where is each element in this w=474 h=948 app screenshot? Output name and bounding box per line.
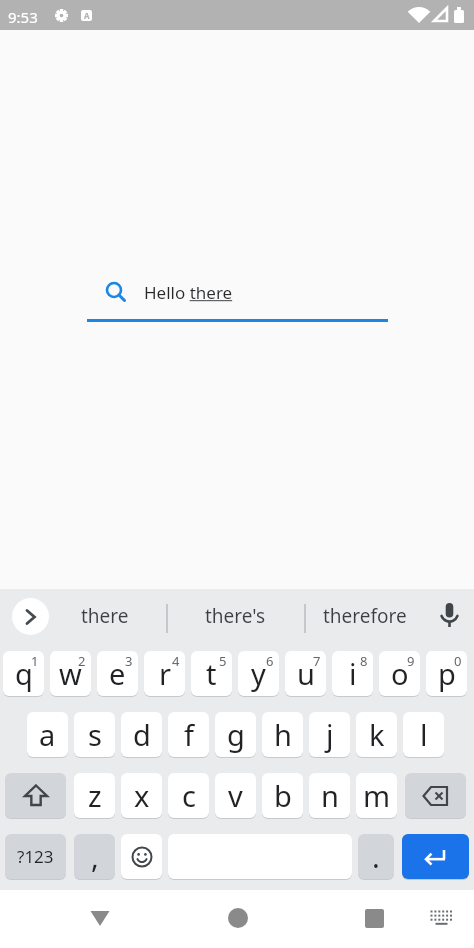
button[interactable]: ?123 (0, 826, 71, 887)
button[interactable] (165, 826, 355, 887)
button[interactable]: x (118, 765, 165, 826)
staticText: 2 (78, 652, 86, 670)
staticText: t (206, 654, 217, 693)
button[interactable] (0, 765, 71, 826)
button[interactable]: u (282, 643, 329, 704)
button[interactable]: therefore (315, 589, 415, 643)
button[interactable]: e (94, 643, 141, 704)
button[interactable]: q (0, 643, 47, 704)
button[interactable]: g (212, 704, 259, 765)
staticText: a (39, 715, 56, 754)
staticText: 9 (407, 652, 415, 670)
staticText: b (274, 776, 292, 815)
staticText: z (88, 776, 102, 815)
staticText: j (326, 715, 334, 754)
staticText: h (274, 715, 292, 754)
button[interactable]: n (306, 765, 353, 826)
button[interactable]: r (141, 643, 188, 704)
button[interactable]: m (353, 765, 400, 826)
staticText: . (372, 837, 380, 876)
button[interactable]: w (47, 643, 94, 704)
staticText: n (321, 776, 339, 815)
button[interactable]: . (355, 826, 397, 887)
button[interactable]: there (55, 589, 155, 643)
staticText: f (184, 715, 194, 754)
staticText: there (81, 603, 129, 629)
button[interactable]: v (212, 765, 259, 826)
staticText: q (15, 654, 33, 693)
button[interactable] (118, 826, 165, 887)
button[interactable]: y (235, 643, 282, 704)
button[interactable] (12, 598, 49, 635)
staticText: therefore (323, 603, 407, 629)
staticText: g (227, 715, 245, 754)
staticText: k (369, 715, 385, 754)
staticText: m (363, 776, 391, 815)
staticText: 5 (219, 652, 227, 670)
staticText: w (59, 654, 82, 693)
staticText: l (420, 715, 428, 754)
button[interactable] (400, 765, 471, 826)
staticText: 0 (454, 652, 462, 670)
staticText: ?123 (17, 845, 54, 868)
staticText: Hello there (144, 281, 233, 304)
button[interactable]: i (329, 643, 376, 704)
button[interactable]: c (165, 765, 212, 826)
staticText: 9:53 (8, 7, 38, 27)
staticText: o (391, 654, 409, 693)
staticText: 7 (313, 652, 321, 670)
button[interactable]: , (71, 826, 118, 887)
button[interactable]: s (71, 704, 118, 765)
button[interactable]: p (423, 643, 470, 704)
button[interactable]: d (118, 704, 165, 765)
staticText: 6 (266, 652, 274, 670)
staticText: p (438, 654, 456, 693)
button[interactable]: k (353, 704, 400, 765)
staticText: A (84, 10, 90, 21)
staticText: 4 (172, 652, 180, 670)
button[interactable]: b (259, 765, 306, 826)
button[interactable]: t (188, 643, 235, 704)
staticText: x (134, 776, 150, 815)
staticText: e (109, 654, 126, 693)
staticText: c (182, 776, 196, 815)
button[interactable]: there's (185, 589, 285, 643)
staticText: there's (205, 603, 266, 629)
button[interactable] (89, 909, 111, 927)
staticText: s (88, 715, 102, 754)
staticText: y (251, 654, 266, 693)
staticText: 1 (31, 652, 39, 670)
button[interactable] (228, 908, 248, 928)
button[interactable]: h (259, 704, 306, 765)
staticText: d (133, 715, 151, 754)
button[interactable]: f (165, 704, 212, 765)
button[interactable]: j (306, 704, 353, 765)
button[interactable]: l (400, 704, 447, 765)
button[interactable]: a (24, 704, 71, 765)
staticText: 3 (125, 652, 133, 670)
button[interactable]: o (376, 643, 423, 704)
staticText: r (159, 654, 171, 693)
button[interactable] (430, 910, 453, 926)
staticText: v (228, 776, 243, 815)
button[interactable] (397, 826, 474, 887)
button[interactable] (438, 602, 461, 629)
button[interactable] (365, 909, 384, 928)
button[interactable]: z (71, 765, 118, 826)
staticText: 8 (360, 652, 368, 670)
staticText: i (349, 654, 357, 693)
staticText: u (297, 654, 315, 693)
staticText: , (91, 837, 99, 876)
